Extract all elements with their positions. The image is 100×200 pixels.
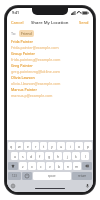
button[interactable]: marcus.p@example.com <box>7 92 93 98</box>
button[interactable]: b <box>55 162 63 170</box>
button[interactable]: Frida Painter <box>7 38 93 44</box>
staticText: e <box>27 144 29 149</box>
staticText: h <box>57 154 60 159</box>
button[interactable]: Cancel <box>7 18 28 27</box>
staticText: m <box>75 164 79 169</box>
button[interactable]: Return <box>72 172 92 180</box>
staticText: Greg Painter <box>11 63 33 68</box>
staticText: Frida.painter@example.com <box>11 45 59 50</box>
staticText: f <box>39 154 41 159</box>
button[interactable]: Send <box>75 18 93 27</box>
staticText: b <box>58 164 61 169</box>
button[interactable]: Emoji <box>22 172 32 180</box>
staticText: d <box>30 154 33 159</box>
staticText: 123 <box>12 174 17 178</box>
staticText: To: <box>11 31 17 36</box>
button[interactable]: y <box>48 142 56 150</box>
staticText: p <box>87 144 90 149</box>
button[interactable]: Backspace <box>82 162 92 170</box>
staticText: q <box>10 144 13 149</box>
staticText: Share My Location <box>31 20 69 26</box>
button[interactable]: e <box>24 142 31 150</box>
button[interactable]: g <box>45 152 53 160</box>
staticText: 9:41 <box>12 10 19 15</box>
staticText: olivia.l.lawson@example.com <box>11 81 61 86</box>
staticText: n <box>67 164 70 169</box>
staticText: Olivia Lawson <box>11 75 35 80</box>
staticText: Send <box>79 20 89 25</box>
staticText: greg.painter.mg@bitline.com <box>11 69 60 74</box>
button[interactable]: Shift <box>8 162 18 170</box>
staticText: r <box>35 144 37 149</box>
button[interactable]: w <box>16 142 23 150</box>
staticText: g <box>48 154 51 159</box>
button[interactable]: Olivia Lawson <box>7 74 93 80</box>
staticText: l <box>85 154 86 159</box>
button[interactable]: d <box>27 152 35 160</box>
staticText: o <box>78 144 81 149</box>
staticText: y <box>51 144 53 149</box>
button[interactable]: n <box>64 162 72 170</box>
staticText: Marcus Painter <box>11 87 37 92</box>
button[interactable]: h <box>54 152 62 160</box>
staticText: marcus.p@example.com <box>11 93 53 98</box>
button[interactable]: c <box>37 162 45 170</box>
button[interactable]: x <box>28 162 36 170</box>
staticText: t <box>43 144 45 149</box>
staticText: return <box>78 174 87 178</box>
button[interactable]: Numbers <box>8 172 21 180</box>
button[interactable]: m <box>73 162 81 170</box>
button[interactable]: greg.painter.mg@bitline.com <box>7 68 93 74</box>
button[interactable]: Marcus Painter <box>7 86 93 92</box>
button[interactable]: Change keyboard <box>10 183 16 189</box>
staticText: j <box>67 154 68 159</box>
staticText: Group Painter <box>11 51 36 56</box>
button[interactable]: Frida.painter@example.com <box>7 44 93 50</box>
button[interactable]: olivia.l.lawson@example.com <box>7 80 93 86</box>
staticText: space <box>48 174 56 178</box>
button[interactable]: Greg Painter <box>7 62 93 68</box>
button[interactable]: p <box>84 142 92 150</box>
button[interactable]: Space <box>33 172 71 180</box>
button[interactable]: r <box>32 142 39 150</box>
button[interactable]: i <box>66 142 74 150</box>
button[interactable]: Dictate <box>84 183 90 189</box>
staticText: v <box>49 164 51 169</box>
button[interactable]: q <box>8 142 15 150</box>
staticText: x <box>31 164 33 169</box>
button[interactable]: s <box>19 152 26 160</box>
staticText: Frida Painter <box>11 39 34 44</box>
staticText: a <box>14 154 16 159</box>
staticText: w <box>18 144 21 149</box>
button[interactable]: l <box>81 152 89 160</box>
button[interactable]: k <box>72 152 80 160</box>
button[interactable]: z <box>19 162 27 170</box>
staticText: Cancel <box>11 20 24 25</box>
button[interactable]: j <box>63 152 71 160</box>
button[interactable]: Group Painter <box>7 50 93 56</box>
staticText: frida.painter.g@example.com <box>11 57 61 62</box>
staticText: c <box>40 164 42 169</box>
button[interactable]: frida.painter.g@example.com <box>7 56 93 62</box>
button[interactable]: o <box>75 142 83 150</box>
button[interactable]: a <box>11 152 18 160</box>
staticText: k <box>75 154 77 159</box>
button[interactable]: t <box>40 142 47 150</box>
staticText: Friend <box>21 31 32 36</box>
staticText: z <box>22 164 24 169</box>
button[interactable]: u <box>57 142 65 150</box>
button[interactable]: f <box>36 152 44 160</box>
button[interactable]: To: <box>7 28 93 38</box>
button[interactable]: v <box>46 162 54 170</box>
staticText: u <box>60 144 63 149</box>
staticText: i <box>70 144 71 149</box>
staticText: s <box>22 154 24 159</box>
